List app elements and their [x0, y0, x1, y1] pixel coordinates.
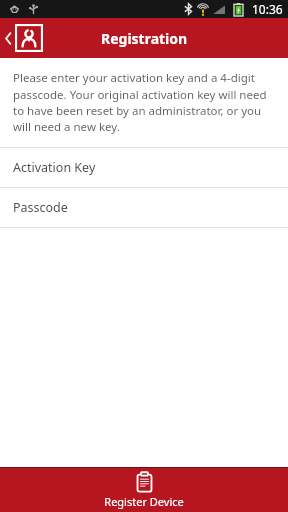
staticText: Registration [101, 29, 188, 48]
staticText: Activation Key [13, 159, 96, 176]
button[interactable]: Activation Key [0, 148, 288, 187]
staticText: Please enter your activation key and a 4… [13, 70, 279, 134]
button[interactable]: Passcode [0, 188, 288, 227]
staticText: 10:36 [252, 1, 283, 17]
button[interactable]: Register Device [0, 468, 288, 512]
staticText: Register Device [104, 494, 184, 509]
staticText: Passcode [13, 199, 68, 216]
button[interactable]: Back [0, 21, 51, 55]
